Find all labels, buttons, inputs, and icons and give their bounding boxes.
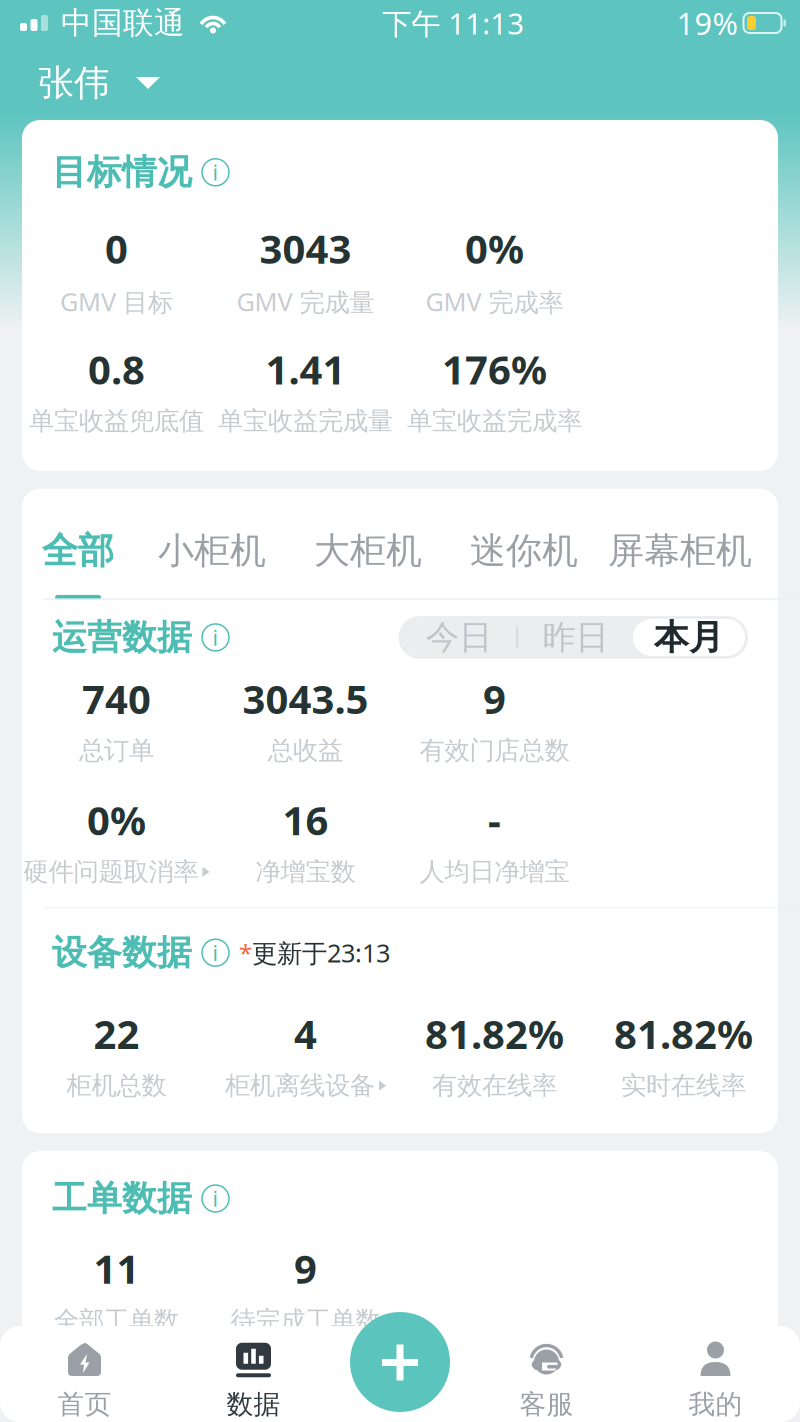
staticText: 硬件问题取消率	[23, 856, 198, 887]
button[interactable]: 首页	[0, 1326, 169, 1422]
button[interactable]: 本月	[633, 619, 745, 656]
staticText: 全部工单数	[54, 1305, 179, 1336]
staticText: 大柜机	[314, 529, 422, 573]
staticText: 3043.5	[242, 672, 368, 725]
staticText: GMV 完成量	[236, 285, 374, 318]
staticText: 客服	[519, 1388, 573, 1421]
staticText: 9	[483, 672, 506, 725]
staticText: 9	[294, 1242, 317, 1295]
staticText: 设备数据	[52, 931, 192, 974]
button[interactable]: 屏幕柜机	[602, 529, 758, 600]
staticText: 昨日	[542, 617, 608, 658]
button[interactable]: 客服	[462, 1326, 631, 1422]
staticText: 0%	[87, 793, 146, 846]
staticText: 屏幕柜机	[608, 529, 752, 573]
button[interactable]: 小柜机	[134, 529, 290, 600]
staticText: 总收益	[268, 735, 343, 766]
staticText: 81.82%	[614, 1007, 753, 1060]
staticText: 单宝收益完成率	[407, 406, 582, 437]
staticText: i	[212, 158, 218, 186]
staticText: 中国联通	[61, 4, 185, 42]
staticText: 数据	[226, 1388, 280, 1421]
staticText: 运营数据	[52, 616, 192, 659]
staticText: 0.8	[88, 342, 145, 396]
button[interactable]: 新建	[350, 1312, 450, 1412]
staticText: 待完成工单数	[230, 1305, 380, 1336]
staticText: *	[239, 937, 252, 969]
staticText: 4	[294, 1007, 317, 1060]
staticText: 我的	[688, 1388, 742, 1421]
button[interactable]: 张伟	[0, 51, 160, 115]
staticText: 176%	[442, 342, 547, 396]
staticText: -	[488, 793, 501, 846]
staticText: 单宝收益兜底值	[29, 406, 204, 437]
staticText: i	[212, 938, 218, 967]
staticText: 总订单	[79, 735, 154, 766]
staticText: 11	[93, 1242, 139, 1295]
staticText: 实时在线率	[621, 1070, 746, 1101]
staticText: 0	[105, 222, 128, 275]
staticText: GMV 目标	[60, 285, 173, 318]
staticText: 今日	[426, 617, 492, 658]
staticText: i	[212, 623, 218, 652]
button[interactable]: 今日	[401, 619, 516, 656]
staticText: 3043	[259, 222, 351, 275]
staticText: 19%	[676, 3, 737, 43]
staticText: 单宝收益完成量	[218, 406, 393, 437]
staticText: 0%	[465, 222, 524, 275]
staticText: 小柜机	[158, 529, 266, 573]
button[interactable]: 数据	[169, 1326, 338, 1422]
button[interactable]: 昨日	[518, 619, 633, 656]
staticText: 740	[82, 672, 151, 725]
staticText: 有效在线率	[432, 1070, 557, 1101]
staticText: 有效门店总数	[419, 735, 569, 766]
staticText: GMV 完成率	[425, 285, 563, 318]
staticText: 人均日净增宝	[419, 856, 569, 887]
staticText: 首页	[57, 1388, 111, 1421]
staticText: 更新于23:13	[252, 936, 390, 969]
staticText: 下午 11:13	[382, 3, 524, 42]
staticText: 本月	[654, 616, 724, 659]
staticText: 16	[282, 793, 328, 846]
staticText: 1.41	[265, 342, 345, 396]
button[interactable]: 大柜机	[290, 529, 446, 600]
staticText: 工单数据	[52, 1177, 192, 1220]
staticText: 张伟	[38, 61, 110, 105]
button[interactable]: 全部	[22, 529, 134, 600]
staticText: 柜机总数	[66, 1070, 166, 1101]
staticText: 柜机离线设备	[225, 1070, 375, 1101]
staticText: 全部	[42, 529, 114, 573]
staticText: 迷你机	[470, 529, 578, 573]
staticText: i	[212, 1184, 218, 1213]
staticText: 净增宝数	[255, 856, 355, 887]
staticText: 目标情况	[52, 151, 192, 194]
staticText: 22	[93, 1007, 139, 1060]
staticText: 81.82%	[425, 1007, 564, 1060]
button[interactable]: 我的	[631, 1326, 800, 1422]
button[interactable]: 迷你机	[446, 529, 602, 600]
